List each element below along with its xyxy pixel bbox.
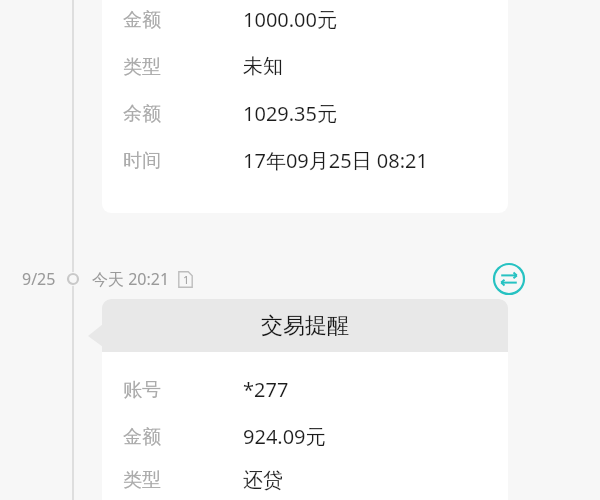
staticText: 金额 (123, 8, 161, 32)
staticText: 金额 (123, 425, 161, 449)
button[interactable]: 金额 (102, 0, 508, 213)
staticText: 9/25 (22, 268, 56, 290)
staticText: 账号 (123, 378, 161, 402)
staticText: 时间 (123, 149, 161, 173)
staticText: 1000.00元 (243, 6, 337, 33)
staticText: 今天 20:21 (92, 268, 170, 290)
staticText: 还贷 (243, 468, 283, 493)
staticText: 1029.35元 (243, 100, 337, 127)
button[interactable]: 交易提醒 (102, 299, 508, 500)
staticText: 17年09月25日 08:21 (243, 147, 428, 174)
staticText: 余额 (123, 102, 161, 126)
staticText: 未知 (243, 54, 283, 79)
staticText: 类型 (123, 468, 161, 492)
staticText: *277 (243, 376, 289, 403)
staticText: 1 (183, 273, 189, 287)
button[interactable]: Transfer (492, 262, 526, 296)
staticText: 交易提醒 (261, 312, 349, 340)
staticText: 924.09元 (243, 423, 326, 450)
staticText: 类型 (123, 55, 161, 79)
